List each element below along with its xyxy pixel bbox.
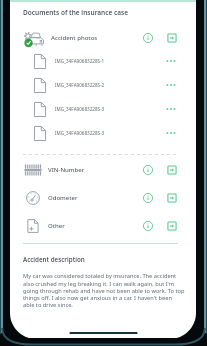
button[interactable]: VIN-Number	[23, 156, 192, 184]
staticText: Accident photos	[51, 34, 98, 42]
staticText: My car was considered totaled by insuran…	[23, 272, 185, 308]
button[interactable]: Export	[166, 192, 178, 204]
button[interactable]: Other	[23, 212, 192, 240]
staticText: Odometer	[48, 194, 78, 202]
button[interactable]: Info	[142, 220, 154, 232]
button[interactable]: More options	[165, 126, 177, 140]
staticText: IMG_34FA90683228S-3	[55, 106, 105, 112]
staticText: Accident description	[23, 255, 85, 263]
staticText: Documents of the insurance case	[23, 8, 129, 17]
staticText: IMG_34FA90683228S-1	[55, 58, 105, 64]
staticText: VIN-Number	[48, 166, 85, 174]
button[interactable]: Info	[142, 192, 154, 204]
button[interactable]: Accident photos	[23, 27, 192, 49]
button[interactable]: Info	[142, 164, 154, 176]
button[interactable]: Info	[142, 32, 154, 44]
button[interactable]: More options	[165, 102, 177, 116]
staticText: Other	[48, 222, 65, 230]
button[interactable]: More options	[165, 78, 177, 92]
button[interactable]: IMG_34FA90683228S-2	[23, 73, 192, 97]
staticText: IMG_34FA90683228S-3	[55, 130, 105, 136]
button[interactable]: Export	[166, 164, 178, 176]
button[interactable]: IMG_34FA90683228S-1	[23, 49, 192, 73]
button[interactable]: Odometer	[23, 184, 192, 212]
button[interactable]: Export	[166, 32, 178, 44]
button[interactable]: Export	[166, 220, 178, 232]
button[interactable]: IMG_34FA90683228S-3	[23, 97, 192, 121]
button[interactable]: IMG_34FA90683228S-3	[23, 121, 192, 145]
button[interactable]: More options	[165, 54, 177, 68]
staticText: IMG_34FA90683228S-2	[55, 82, 105, 88]
